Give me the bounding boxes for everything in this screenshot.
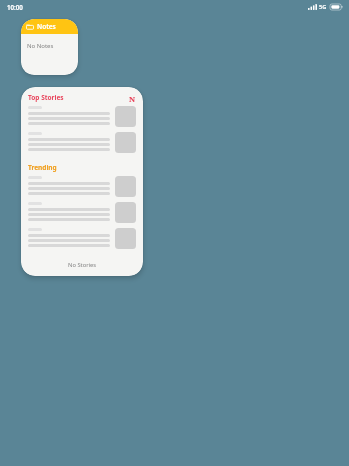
staticText: Notes [37,22,56,31]
staticText: No Stories [68,261,97,269]
staticText: 10:00 [7,3,23,11]
staticText: N [129,94,136,102]
button[interactable] [28,228,136,249]
staticText: Trending [28,163,57,172]
button[interactable] [28,176,136,197]
button[interactable]: Top Stories [21,87,143,276]
button[interactable] [28,202,136,223]
staticText: No Notes [27,42,54,50]
button[interactable] [28,132,136,153]
button[interactable]: Notes [21,19,78,75]
staticText: Top Stories [28,93,64,102]
staticText: 5G [319,3,327,11]
other: News [128,94,136,102]
button[interactable] [28,106,136,127]
